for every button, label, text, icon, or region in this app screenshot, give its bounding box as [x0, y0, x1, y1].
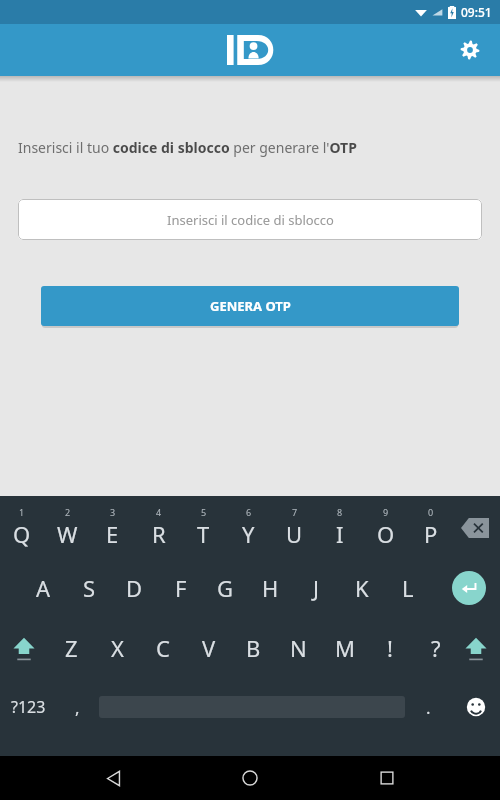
- button[interactable]: 3: [90, 496, 135, 558]
- staticText: 5: [201, 506, 207, 518]
- button[interactable]: ,: [56, 678, 98, 736]
- button[interactable]: 9: [363, 496, 408, 558]
- staticText: W: [57, 519, 78, 549]
- staticText: Q: [13, 519, 31, 549]
- staticText: 0: [428, 506, 434, 518]
- staticText: R: [152, 519, 166, 549]
- staticText: F: [175, 573, 187, 603]
- button[interactable]: 2: [45, 496, 90, 558]
- button[interactable]: ?: [413, 618, 458, 678]
- staticText: 1: [19, 506, 25, 518]
- staticText: S: [83, 573, 96, 603]
- staticText: Inserisci il tuo codice di sblocco per g…: [18, 138, 357, 157]
- staticText: V: [202, 633, 216, 663]
- button[interactable]: Shift: [455, 618, 497, 678]
- staticText: Inserisci il codice di sblocco: [167, 211, 334, 229]
- button[interactable]: 1: [0, 496, 44, 558]
- staticText: M: [335, 633, 355, 663]
- staticText: L: [402, 573, 414, 603]
- button[interactable]: G: [203, 558, 248, 618]
- staticText: GENERA OTP: [210, 297, 291, 315]
- button[interactable]: Z: [49, 618, 94, 678]
- button[interactable]: ?123: [0, 678, 56, 736]
- staticText: 2: [65, 506, 71, 518]
- button[interactable]: D: [112, 558, 157, 618]
- button[interactable]: X: [95, 618, 140, 678]
- staticText: K: [355, 573, 369, 603]
- button[interactable]: B: [231, 618, 276, 678]
- button[interactable]: C: [140, 618, 185, 678]
- button[interactable]: .: [408, 678, 448, 736]
- staticText: 3: [110, 506, 116, 518]
- staticText: A: [36, 573, 51, 603]
- button[interactable]: 7: [272, 496, 317, 558]
- button[interactable]: Back: [89, 756, 137, 800]
- button[interactable]: Enter: [452, 571, 486, 605]
- staticText: U: [286, 519, 303, 549]
- staticText: Z: [65, 633, 78, 663]
- staticText: P: [424, 519, 438, 549]
- button[interactable]: S: [67, 558, 112, 618]
- staticText: N: [290, 633, 307, 663]
- staticText: H: [262, 573, 279, 603]
- staticText: D: [126, 573, 143, 603]
- button[interactable]: Inserisci il codice di sblocco: [18, 199, 482, 240]
- staticText: 9: [383, 506, 389, 518]
- staticText: ,: [75, 696, 80, 719]
- button[interactable]: !: [367, 618, 412, 678]
- button[interactable]: 6: [226, 496, 271, 558]
- staticText: B: [246, 633, 261, 663]
- staticText: 8: [337, 506, 343, 518]
- button[interactable]: Shift: [3, 618, 45, 678]
- button[interactable]: F: [158, 558, 203, 618]
- button[interactable]: 4: [136, 496, 181, 558]
- button[interactable]: Home: [226, 756, 274, 800]
- button[interactable]: V: [186, 618, 231, 678]
- button[interactable]: A: [21, 558, 66, 618]
- staticText: .: [426, 696, 431, 719]
- button[interactable]: L: [385, 558, 430, 618]
- staticText: ?: [431, 633, 441, 663]
- button[interactable]: 8: [317, 496, 362, 558]
- staticText: 6: [246, 506, 252, 518]
- button[interactable]: Emoji: [455, 678, 497, 736]
- staticText: G: [217, 573, 234, 603]
- button[interactable]: 5: [181, 496, 226, 558]
- button[interactable]: 0: [408, 496, 453, 558]
- staticText: Y: [242, 519, 255, 549]
- button[interactable]: M: [322, 618, 367, 678]
- button[interactable]: GENERA OTP: [41, 286, 459, 326]
- button[interactable]: Settings: [454, 34, 486, 66]
- staticText: E: [106, 519, 119, 549]
- button[interactable]: J: [294, 558, 339, 618]
- staticText: C: [156, 633, 170, 663]
- button[interactable]: Recent apps: [363, 756, 411, 800]
- button[interactable]: H: [248, 558, 293, 618]
- button[interactable]: K: [339, 558, 384, 618]
- button[interactable]: N: [276, 618, 321, 678]
- staticText: 4: [156, 506, 162, 518]
- staticText: O: [377, 519, 395, 549]
- staticText: T: [197, 519, 210, 549]
- staticText: ?123: [11, 696, 46, 718]
- staticText: !: [387, 633, 393, 663]
- button[interactable]: Backspace: [455, 514, 495, 542]
- staticText: X: [111, 633, 124, 663]
- staticText: 09:51: [461, 4, 492, 20]
- staticText: I: [336, 519, 344, 549]
- staticText: 7: [292, 506, 298, 518]
- staticText: J: [313, 573, 320, 603]
